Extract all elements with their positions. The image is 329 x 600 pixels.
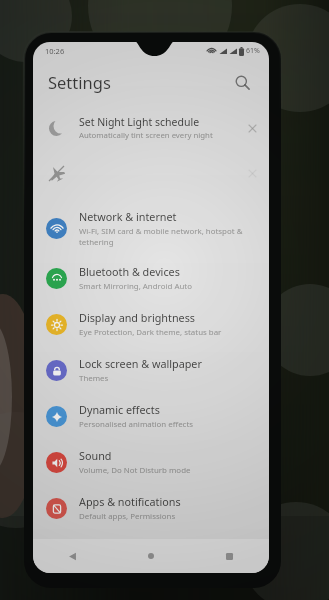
staticText: Themes (79, 373, 109, 384)
button[interactable]: Apps & notifications (33, 485, 269, 531)
button[interactable]: Back (33, 539, 111, 573)
staticText: Set Night Light schedule (79, 115, 200, 129)
button[interactable]: Network & internet (33, 201, 269, 255)
button[interactable]: Bluetooth & devices (33, 255, 269, 301)
button[interactable]: Dismiss suggestion (239, 115, 265, 141)
staticText: Display and brightness (79, 310, 196, 325)
staticText: Dynamic effects (79, 402, 160, 417)
staticText: Apps & notifications (79, 494, 181, 509)
staticText: Wi-Fi, SIM card & mobile network, hotspo… (79, 226, 255, 247)
staticText: Settings (48, 71, 111, 93)
staticText: Network & internet (79, 209, 177, 224)
button[interactable]: Display and brightness (33, 301, 269, 347)
staticText: Volume, Do Not Disturb mode (79, 465, 191, 476)
button[interactable]: Search settings (227, 67, 257, 97)
button[interactable]: Dynamic effects (33, 393, 269, 439)
staticText: 10:26 (45, 46, 65, 56)
staticText: Smart Mirroring, Android Auto (79, 281, 192, 292)
staticText: Personalised animation effects (79, 419, 194, 430)
button[interactable]: Dismiss suggestion (33, 154, 269, 192)
button[interactable]: Lock screen & wallpaper (33, 347, 269, 393)
button[interactable]: Set Night Light schedule (33, 109, 269, 147)
staticText: Automatically tint screen every night (79, 130, 213, 141)
staticText: Bluetooth & devices (79, 264, 180, 279)
staticText: Lock screen & wallpaper (79, 356, 202, 371)
button[interactable]: Home (111, 539, 190, 573)
staticText: Default apps, Permissions (79, 511, 176, 522)
button[interactable]: Recent apps (190, 539, 269, 573)
staticText: Sound (79, 448, 112, 463)
button[interactable]: Sound (33, 439, 269, 485)
staticText: Eye Protection, Dark theme, status bar (79, 327, 222, 338)
staticText: 61% (246, 46, 260, 56)
